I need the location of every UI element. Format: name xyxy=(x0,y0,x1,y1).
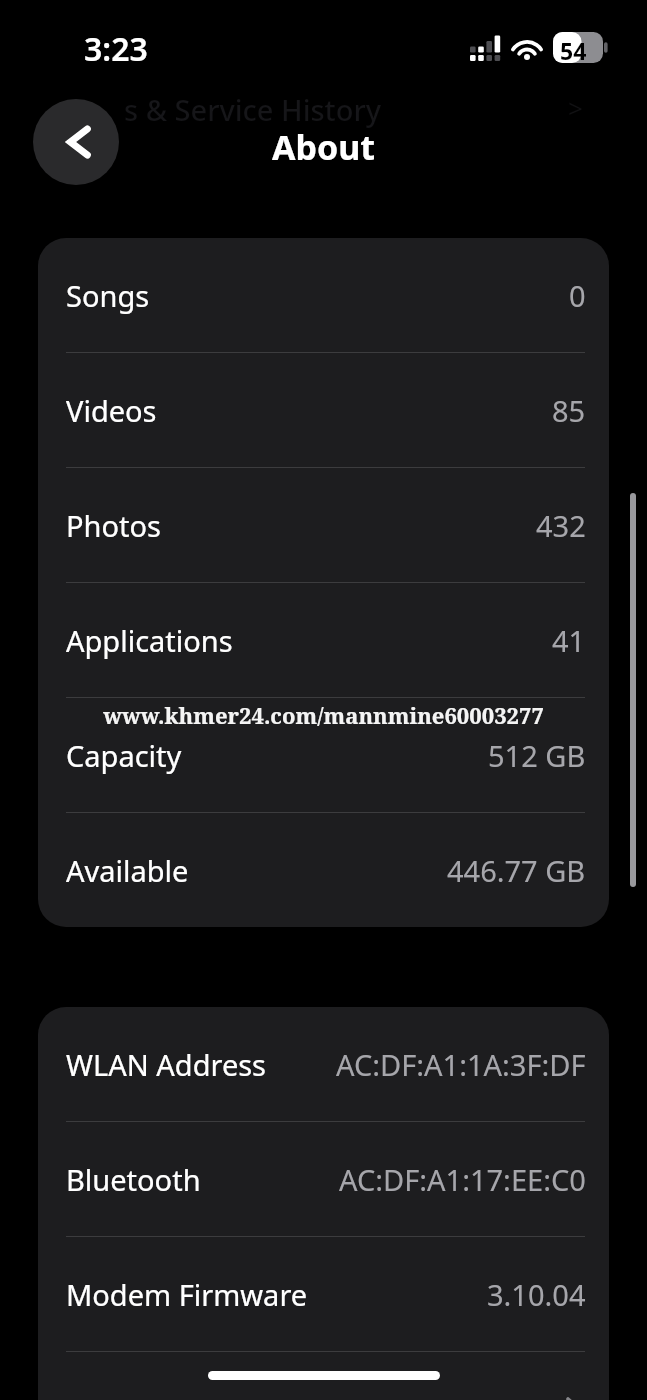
staticText: Videos xyxy=(66,391,157,430)
other: Open SEID xyxy=(560,1396,586,1400)
staticText: Photos xyxy=(66,506,161,545)
button[interactable]: Back xyxy=(33,99,119,185)
staticText: 0 xyxy=(569,276,586,315)
staticText: 512 GB xyxy=(488,736,586,775)
staticText: 3.10.04 xyxy=(487,1275,586,1314)
staticText: 41 xyxy=(552,621,586,660)
button[interactable]: Songs xyxy=(38,238,609,352)
button[interactable]: Applications xyxy=(38,583,609,697)
button[interactable]: WLAN Address xyxy=(38,1007,609,1121)
staticText: 54 xyxy=(560,35,587,66)
staticText: Songs xyxy=(66,276,150,315)
staticText: Modem Firmware xyxy=(66,1275,308,1314)
staticText: 432 xyxy=(536,506,586,545)
button[interactable]: Videos xyxy=(38,353,609,467)
button[interactable]: SEID xyxy=(38,1352,609,1400)
staticText: 3:23 xyxy=(84,27,148,71)
staticText: 446.77 GB xyxy=(447,851,586,890)
staticText: About xyxy=(0,124,647,170)
staticText: Applications xyxy=(66,621,233,660)
button[interactable]: Capacity xyxy=(38,698,609,812)
staticText: > xyxy=(568,90,583,125)
staticText: Capacity xyxy=(66,736,182,775)
button[interactable]: Photos xyxy=(38,468,609,582)
staticText: Available xyxy=(66,851,189,890)
button[interactable]: Available xyxy=(38,813,609,927)
staticText: AC:DF:A1:17:EE:C0 xyxy=(339,1160,586,1199)
staticText: www.khmer24.com/mannmine60003277 xyxy=(0,700,647,730)
staticText: WLAN Address xyxy=(66,1045,267,1084)
button[interactable]: Bluetooth xyxy=(38,1122,609,1236)
button[interactable]: Modem Firmware xyxy=(38,1237,609,1351)
staticText: AC:DF:A1:1A:3F:DF xyxy=(336,1045,586,1084)
staticText: s & Service History xyxy=(124,90,381,129)
staticText: 85 xyxy=(552,391,586,430)
staticText: Bluetooth xyxy=(66,1160,201,1199)
